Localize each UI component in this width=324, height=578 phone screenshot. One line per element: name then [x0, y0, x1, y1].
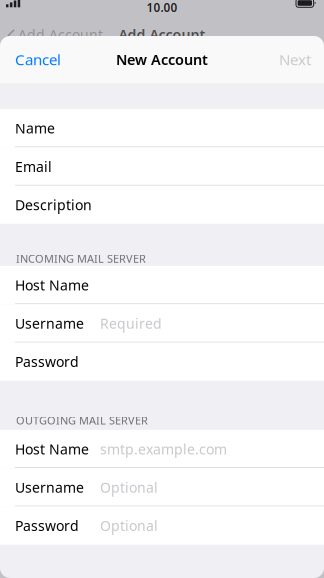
staticText: Optional [100, 478, 158, 497]
staticText: Optional [100, 516, 158, 535]
button[interactable]: Host Name [0, 266, 324, 304]
button[interactable]: Name [0, 109, 324, 147]
button[interactable]: Username [0, 468, 324, 506]
staticText: New Account [116, 50, 208, 69]
staticText: OUTGOING MAIL SERVER [16, 413, 148, 428]
button[interactable]: Host Name [0, 430, 324, 468]
staticText: Password [15, 352, 79, 371]
staticText: smtp.example.com [100, 439, 227, 458]
staticText: Add Account [18, 25, 103, 44]
staticText: Host Name [15, 439, 89, 458]
button[interactable]: Password [0, 342, 324, 381]
staticText: 10.00 [146, 0, 177, 15]
button[interactable]: Password [0, 506, 324, 545]
staticText: Username [15, 314, 84, 333]
button[interactable]: Cancel [0, 36, 73, 83]
staticText: Email [15, 157, 52, 176]
staticText: Username [15, 478, 84, 497]
staticText: Required [100, 314, 162, 333]
button[interactable]: Username [0, 304, 324, 342]
staticText: Next [279, 49, 311, 70]
staticText: Host Name [15, 275, 89, 295]
button[interactable]: Email [0, 147, 324, 186]
staticText: Add Account [118, 25, 205, 44]
button[interactable]: Description [0, 186, 324, 224]
staticText: Description [15, 195, 92, 214]
staticText: Password [15, 516, 79, 535]
staticText: Cancel [15, 49, 61, 70]
button[interactable]: Next [267, 36, 324, 83]
staticText: INCOMING MAIL SERVER [16, 251, 146, 266]
staticText: Name [15, 119, 55, 138]
